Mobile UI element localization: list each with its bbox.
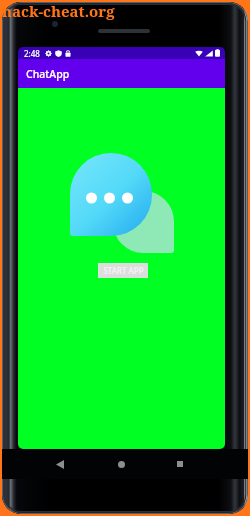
button[interactable]: ChatApp <box>18 59 225 88</box>
button[interactable]: START APP <box>98 263 148 278</box>
staticText: hack-cheat.org <box>2 1 115 21</box>
staticText: START APP <box>103 265 144 276</box>
button[interactable]: Recent apps <box>168 452 192 476</box>
button[interactable]: Back <box>48 452 72 476</box>
staticText: 2:48 <box>24 48 40 59</box>
button[interactable]: Home <box>109 452 133 476</box>
staticText: ChatApp <box>26 67 70 81</box>
